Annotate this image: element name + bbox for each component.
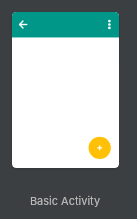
button[interactable]: Add [88,136,111,159]
button[interactable]: Navigate up [14,15,33,34]
staticText: Basic Activity [12,194,118,207]
button[interactable]: Basic Activity template preview [12,12,119,168]
button[interactable]: More options [100,15,119,34]
